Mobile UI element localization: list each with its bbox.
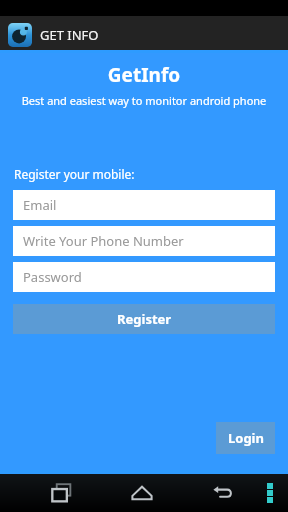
button[interactable]: GetInfo app icon — [8, 23, 32, 47]
staticText: Login — [228, 429, 264, 447]
button[interactable]: Write Your Phone Number — [13, 226, 275, 256]
button[interactable]: Email — [13, 190, 275, 220]
staticText: Best and easiest way to monitor android … — [0, 93, 288, 108]
staticText: GET INFO — [40, 26, 99, 44]
button[interactable]: Recent apps — [40, 474, 84, 512]
button[interactable]: Login — [216, 422, 275, 454]
staticText: Password — [23, 268, 82, 286]
staticText: Email — [23, 196, 57, 214]
button[interactable]: Home — [120, 474, 164, 512]
button[interactable]: Back — [200, 474, 244, 512]
button[interactable]: Password — [13, 262, 275, 292]
staticText: Write Your Phone Number — [23, 232, 184, 250]
staticText: Register your mobile: — [14, 166, 135, 182]
staticText: GetInfo — [0, 62, 288, 88]
staticText: Register — [117, 310, 172, 328]
button[interactable]: More options — [258, 474, 282, 512]
button[interactable]: Register — [13, 304, 275, 334]
